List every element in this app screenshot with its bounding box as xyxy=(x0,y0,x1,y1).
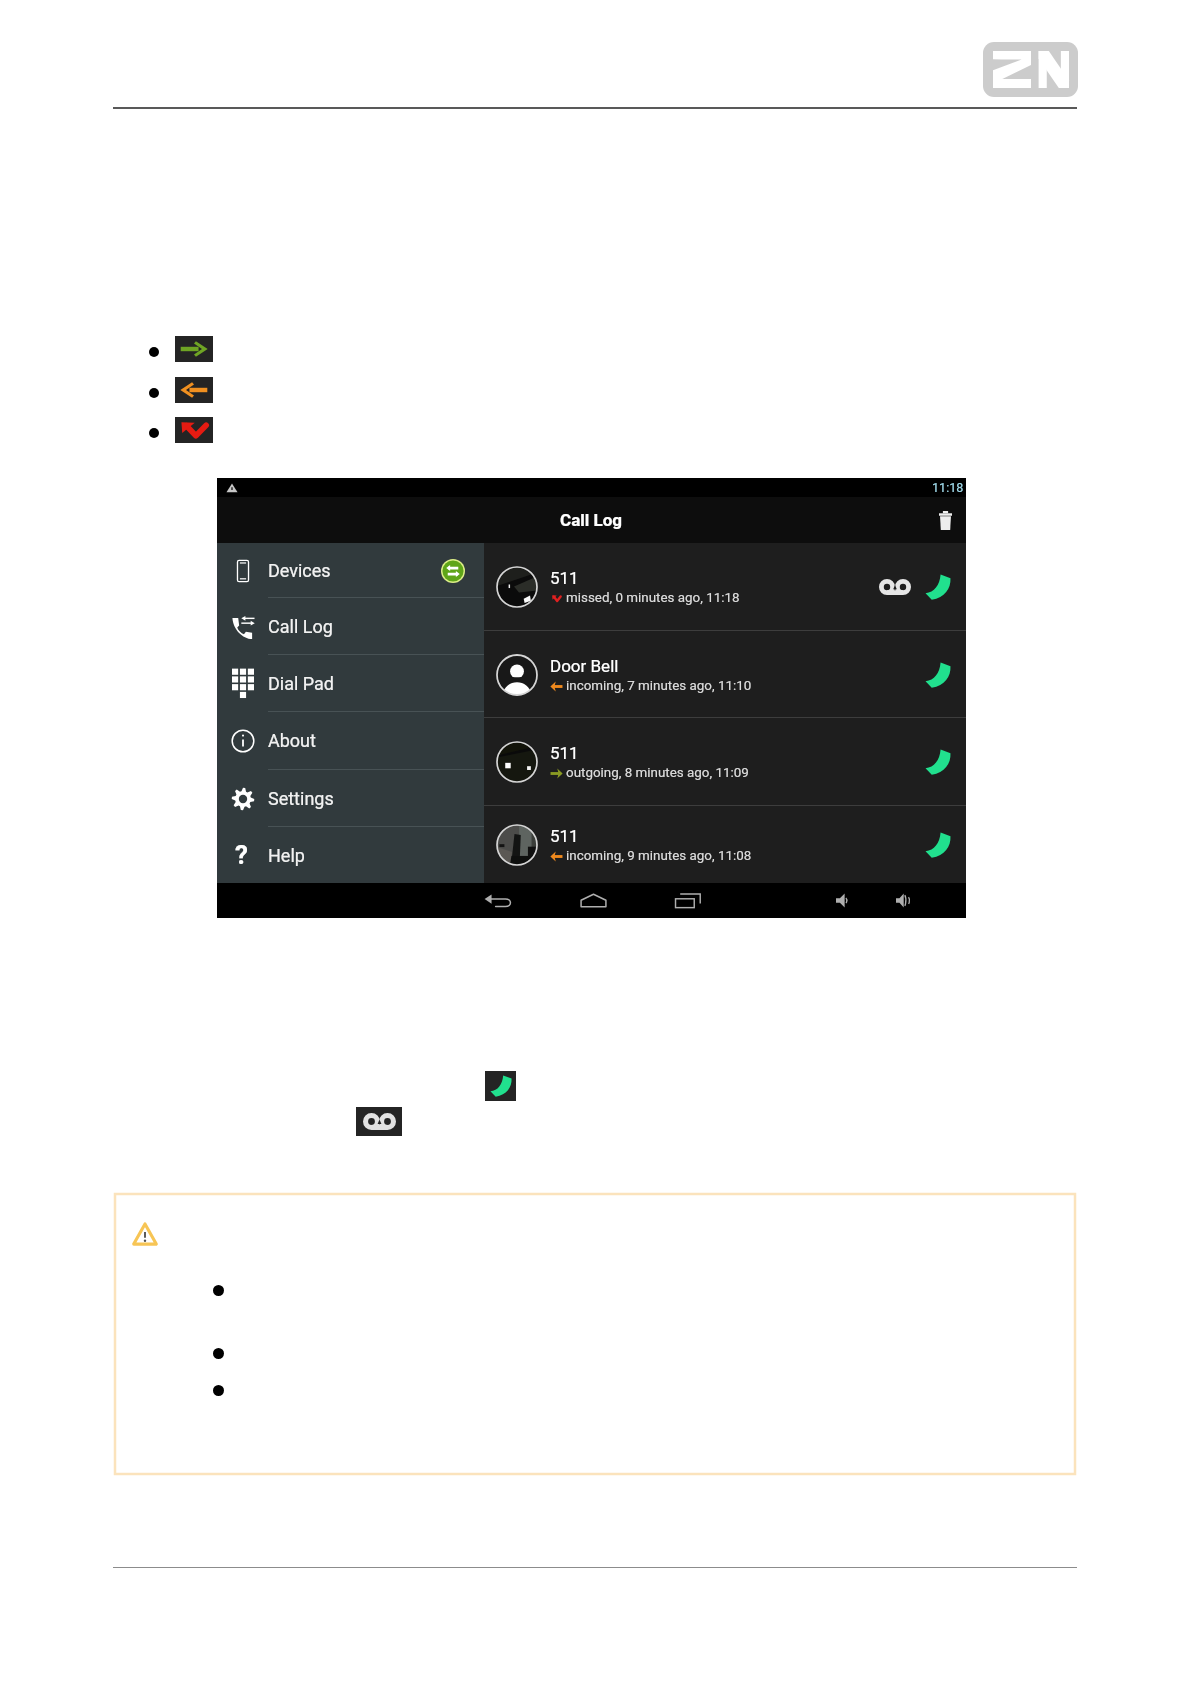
button[interactable]: Call back xyxy=(916,740,960,784)
button[interactable]: Settings xyxy=(217,770,484,827)
staticText: Call Log xyxy=(268,616,333,637)
button[interactable]: Dial Pad xyxy=(217,655,484,712)
button[interactable]: Call back xyxy=(916,653,960,697)
staticText: incoming, 9 minutes ago, 11:08 xyxy=(566,848,752,864)
staticText: missed, 0 minutes ago, 11:18 xyxy=(566,590,740,606)
button[interactable]: Call Log xyxy=(217,598,484,655)
button[interactable]: Call back xyxy=(916,823,960,867)
button[interactable]: Devices xyxy=(217,543,484,598)
staticText: Door Bell xyxy=(550,656,619,676)
staticText: 511 xyxy=(550,743,579,763)
staticText: incoming, 7 minutes ago, 11:10 xyxy=(566,678,752,694)
button[interactable]: 511 xyxy=(484,806,966,884)
button[interactable]: Voicemail xyxy=(873,567,917,607)
staticText: 511 xyxy=(550,826,579,846)
button[interactable]: Home xyxy=(576,884,610,917)
staticText: Settings xyxy=(268,788,334,809)
button[interactable]: Door Bell xyxy=(484,631,966,718)
button[interactable]: Volume up xyxy=(886,884,920,917)
button[interactable]: 511 xyxy=(484,543,966,631)
button[interactable]: ? xyxy=(217,827,484,884)
button[interactable]: Volume down xyxy=(825,884,859,917)
staticText: outgoing, 8 minutes ago, 11:09 xyxy=(566,765,749,781)
staticText: 11:18 xyxy=(932,480,964,495)
staticText: Dial Pad xyxy=(268,673,335,694)
button[interactable]: Call back xyxy=(916,565,960,609)
button[interactable]: 511 xyxy=(484,718,966,806)
staticText: Help xyxy=(268,845,305,866)
button[interactable]: About xyxy=(217,712,484,769)
staticText: Devices xyxy=(268,560,331,581)
button[interactable]: Back xyxy=(481,884,515,917)
button[interactable]: Delete call log xyxy=(929,504,961,536)
staticText: ? xyxy=(235,840,248,870)
button[interactable]: Recents xyxy=(671,884,705,917)
staticText: Call Log xyxy=(560,510,623,530)
staticText: 511 xyxy=(550,568,579,588)
staticText: About xyxy=(268,730,316,751)
